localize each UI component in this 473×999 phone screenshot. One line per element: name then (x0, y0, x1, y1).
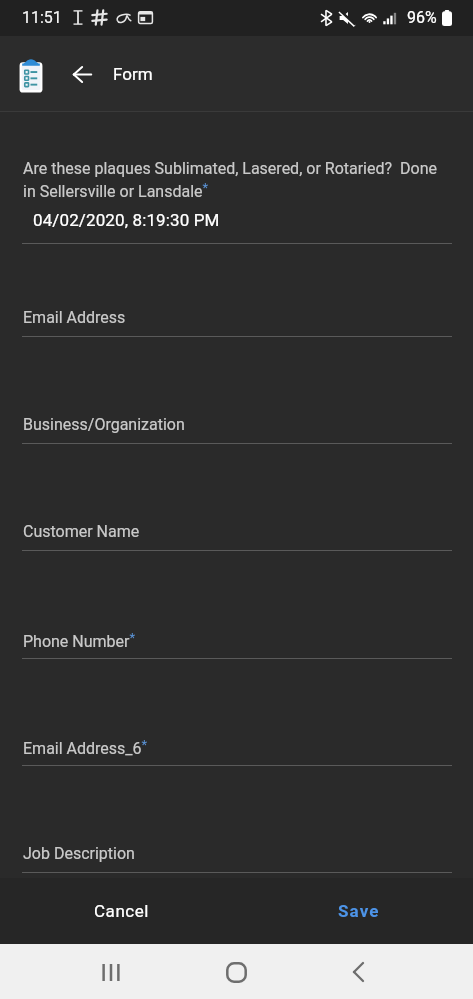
staticText: Are these plaques Sublimated, Lasered, o… (23, 159, 437, 178)
button[interactable]: Home (212, 948, 260, 996)
staticText: Save (338, 901, 380, 921)
staticText: Cancel (94, 901, 150, 921)
button[interactable]: Back (62, 54, 102, 94)
staticText: Job Description (23, 844, 135, 863)
staticText: Form (113, 64, 153, 84)
staticText: Business/Organization (23, 415, 185, 434)
staticText: 96% (407, 8, 437, 27)
staticText: 04/02/2020, 8:19:30 PM (33, 210, 220, 230)
staticText: in Sellersville or Lansdale* (23, 180, 209, 201)
button[interactable]: Save (244, 878, 473, 944)
button[interactable]: Back (334, 948, 382, 996)
staticText: 11:51 (22, 8, 62, 27)
staticText: Email Address (23, 308, 126, 327)
button[interactable]: Cancel (8, 878, 236, 944)
staticText: Phone Number* (23, 630, 136, 651)
button[interactable]: Recent apps (87, 948, 135, 996)
staticText: Email Address_6* (23, 737, 148, 758)
staticText: Customer Name (23, 522, 140, 541)
